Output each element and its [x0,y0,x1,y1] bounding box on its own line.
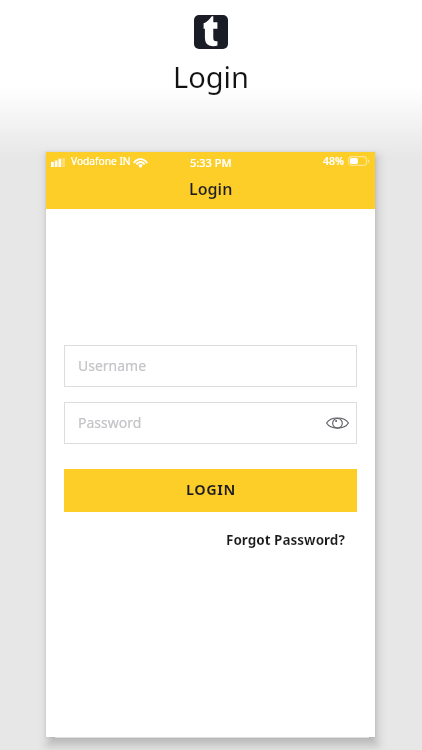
staticText: Login [189,178,233,200]
staticText: Vodafone IN [71,154,131,168]
staticText: 48% [323,154,344,168]
staticText: Username [78,356,147,375]
staticText: LOGIN [186,479,236,499]
staticText: 5:33 PM [190,155,232,170]
staticText: Password [78,413,142,432]
button[interactable]: Show password [321,407,353,439]
staticText: Forgot Password? [226,531,345,549]
button[interactable]: Forgot Password? [216,523,357,555]
button[interactable]: Username [64,345,357,387]
button[interactable]: Password [64,402,357,444]
staticText: Login [0,57,422,96]
button[interactable]: LOGIN [64,469,357,512]
